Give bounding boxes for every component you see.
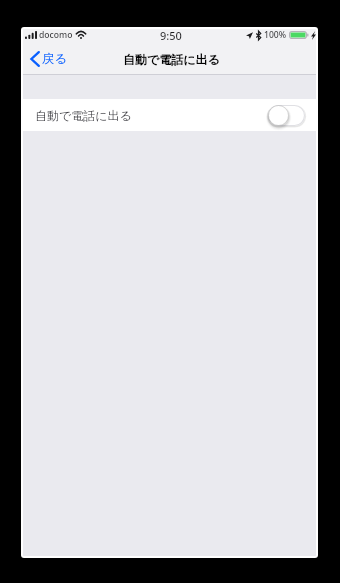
staticText: 9:50 [160,28,182,41]
staticText: docomo [39,29,73,41]
staticText: 自動で電話に出る [35,108,132,123]
other: Back [30,51,40,67]
staticText: 自動で電話に出る [123,52,220,67]
staticText: 100% [264,29,287,41]
button[interactable]: Auto answer calls toggle, off [268,105,305,126]
button[interactable]: Back [23,47,78,71]
button[interactable]: 自動で電話に出る [23,99,316,131]
staticText: 戻る [42,51,68,67]
